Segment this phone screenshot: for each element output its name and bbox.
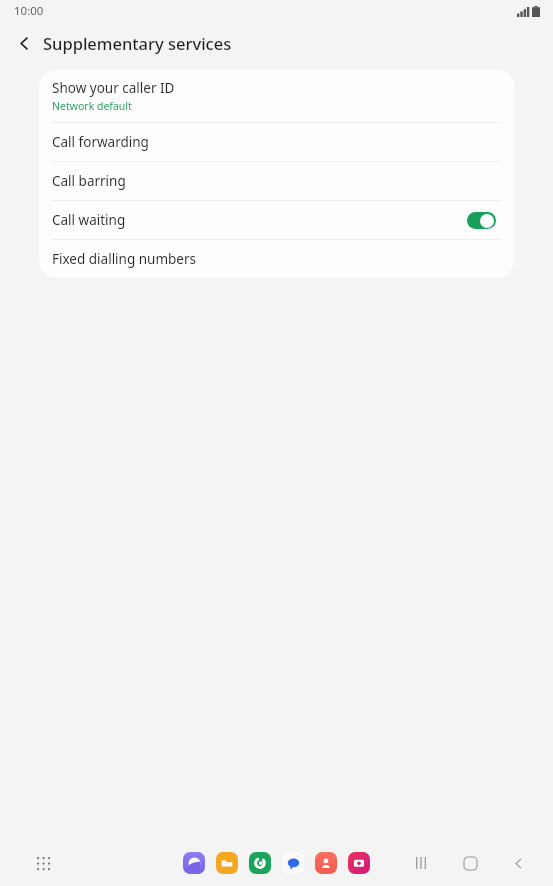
button[interactable]: Home (457, 850, 483, 876)
staticText: 10:00 (14, 3, 44, 19)
button[interactable]: Call forwarding (39, 123, 514, 161)
staticText: Call forwarding (52, 133, 149, 151)
button[interactable]: Show your caller ID (39, 70, 514, 122)
staticText: Call waiting (52, 211, 467, 229)
button[interactable]: Call waiting toggle, on (467, 212, 496, 229)
button[interactable]: Messages (282, 852, 304, 874)
staticText: Show your caller ID (52, 79, 175, 97)
staticText: Fixed dialling numbers (52, 250, 197, 268)
button[interactable]: Apps (30, 850, 56, 876)
staticText: Call barring (52, 172, 126, 190)
button[interactable]: My Files (216, 852, 238, 874)
button[interactable]: Fixed dialling numbers (39, 240, 514, 278)
staticText: Supplementary services (43, 32, 232, 54)
button[interactable]: Camera (348, 852, 370, 874)
button[interactable]: Back (8, 27, 40, 59)
staticText: Network default (52, 99, 132, 113)
button[interactable]: Internet (183, 852, 205, 874)
button[interactable]: Phone (249, 852, 271, 874)
button[interactable]: Back (505, 850, 531, 876)
button[interactable]: Call barring (39, 162, 514, 200)
button[interactable]: Call waiting (39, 201, 514, 239)
button[interactable]: Recent apps (409, 850, 435, 876)
button[interactable]: Contacts (315, 852, 337, 874)
